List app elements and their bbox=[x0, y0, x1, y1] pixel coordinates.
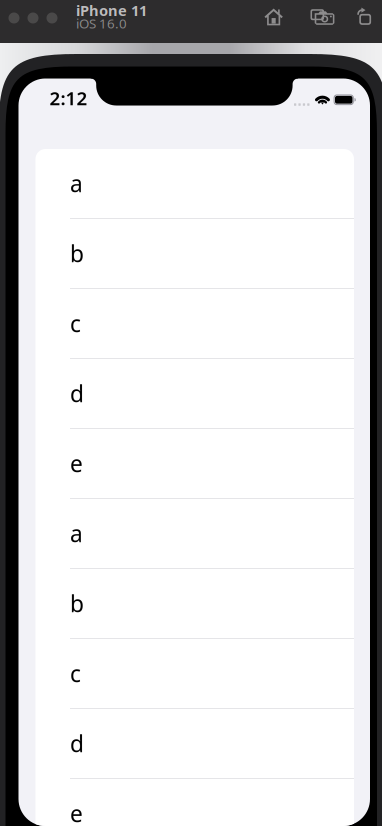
staticText: a bbox=[70, 168, 83, 198]
button[interactable]: c bbox=[35, 639, 354, 709]
button[interactable]: e bbox=[35, 429, 354, 499]
staticText: d bbox=[70, 378, 84, 408]
staticText: e bbox=[70, 448, 83, 478]
staticText: a bbox=[70, 518, 83, 548]
button[interactable]: d bbox=[35, 709, 354, 779]
button[interactable]: e bbox=[35, 779, 354, 826]
staticText: b bbox=[70, 238, 84, 268]
button[interactable]: b bbox=[35, 569, 354, 639]
button[interactable]: Rotate bbox=[349, 1, 379, 31]
staticText: c bbox=[70, 658, 81, 688]
staticText: 2:12 bbox=[49, 86, 87, 110]
button[interactable]: d bbox=[35, 359, 354, 429]
button[interactable]: Screenshot bbox=[307, 0, 337, 32]
button[interactable]: Minimise bbox=[27, 12, 38, 23]
button[interactable]: a bbox=[35, 149, 354, 219]
staticText: e bbox=[70, 798, 83, 826]
staticText: iOS 16.0 bbox=[76, 14, 127, 32]
button[interactable]: Close bbox=[8, 12, 19, 23]
staticText: b bbox=[70, 588, 84, 618]
button[interactable]: Home bbox=[259, 1, 289, 31]
button[interactable]: Zoom bbox=[46, 12, 57, 23]
button[interactable]: b bbox=[35, 219, 354, 289]
staticText: iPhone 11 bbox=[76, 0, 147, 20]
button[interactable]: c bbox=[35, 289, 354, 359]
staticText: c bbox=[70, 308, 81, 338]
staticText: d bbox=[70, 728, 84, 758]
button[interactable]: a bbox=[35, 499, 354, 569]
